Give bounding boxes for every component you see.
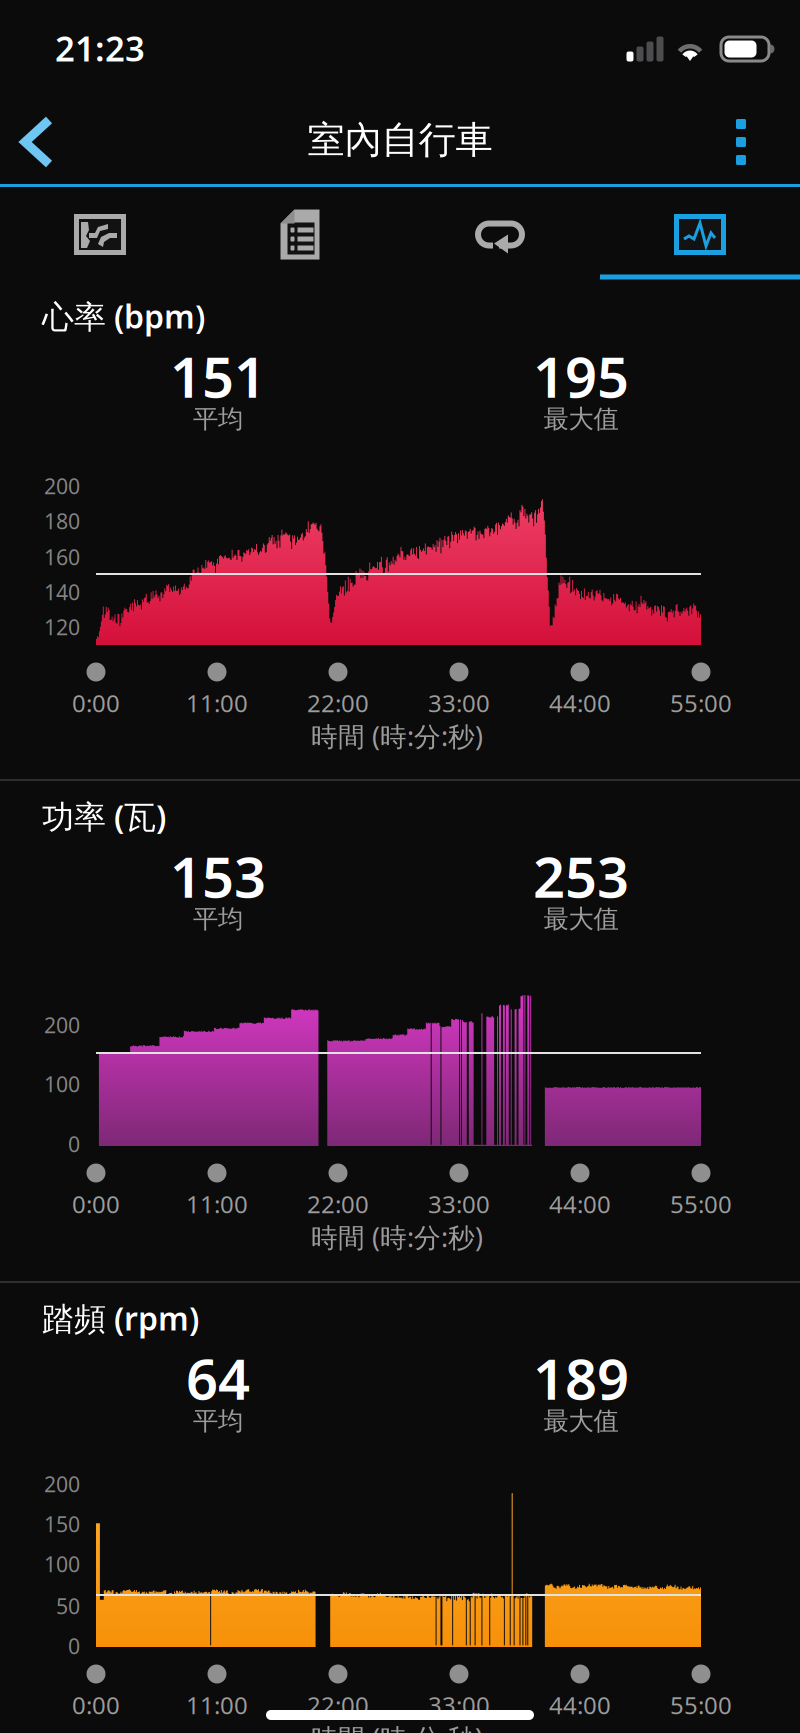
staticText: 0:00 <box>72 1188 120 1220</box>
button[interactable]: Laps <box>200 189 400 279</box>
staticText: 33:00 <box>428 1689 490 1721</box>
staticText: 33:00 <box>428 687 490 719</box>
staticText: 180 <box>44 507 80 535</box>
staticText: 平均 <box>193 903 243 934</box>
staticText: 200 <box>44 472 80 500</box>
staticText: 11:00 <box>186 687 248 719</box>
staticText: 55:00 <box>670 687 732 719</box>
staticText: 時間 (時:分:秒) <box>311 718 483 754</box>
staticText: 153 <box>170 839 266 913</box>
staticText: 時間 (時:分:秒) <box>311 1219 483 1255</box>
staticText: 44:00 <box>549 1188 611 1220</box>
staticText: 44:00 <box>549 1689 611 1721</box>
staticText: 22:00 <box>307 1188 369 1220</box>
staticText: 0 <box>68 1632 80 1660</box>
staticText: 22:00 <box>307 1689 369 1721</box>
button[interactable]: More options <box>704 95 778 189</box>
staticText: 44:00 <box>549 687 611 719</box>
staticText: 100 <box>44 1070 80 1098</box>
staticText: 200 <box>44 1470 80 1498</box>
staticText: 最大值 <box>543 903 618 934</box>
staticText: 22:00 <box>307 687 369 719</box>
staticText: 心率 (bpm) <box>42 295 205 337</box>
staticText: 120 <box>44 613 80 641</box>
staticText: 151 <box>170 339 266 413</box>
staticText: 195 <box>533 339 629 413</box>
button[interactable]: Charts <box>600 189 800 279</box>
staticText: 0 <box>68 1130 80 1158</box>
staticText: 140 <box>44 578 80 606</box>
button[interactable]: Back <box>0 95 74 189</box>
staticText: 253 <box>533 839 629 913</box>
staticText: 室內自行車 <box>307 117 492 163</box>
button[interactable]: Intervals <box>400 189 600 279</box>
staticText: 11:00 <box>186 1689 248 1721</box>
staticText: 時間 (時:分:秒) <box>311 1720 483 1733</box>
staticText: 最大值 <box>543 1405 618 1436</box>
staticText: 160 <box>44 543 80 571</box>
staticText: 功率 (瓦) <box>42 795 166 837</box>
staticText: 最大值 <box>543 403 618 434</box>
staticText: 0:00 <box>72 687 120 719</box>
staticText: 64 <box>186 1341 250 1415</box>
staticText: 100 <box>44 1550 80 1578</box>
button[interactable]: Map <box>0 189 200 279</box>
staticText: 55:00 <box>670 1689 732 1721</box>
staticText: 50 <box>56 1592 80 1620</box>
staticText: 平均 <box>193 403 243 434</box>
staticText: 11:00 <box>186 1188 248 1220</box>
staticText: 189 <box>533 1341 629 1415</box>
staticText: 21:23 <box>55 25 145 71</box>
staticText: 0:00 <box>72 1689 120 1721</box>
staticText: 200 <box>44 1011 80 1039</box>
staticText: 踏頻 (rpm) <box>42 1297 199 1339</box>
staticText: 55:00 <box>670 1188 732 1220</box>
staticText: 150 <box>44 1510 80 1538</box>
staticText: 平均 <box>193 1405 243 1436</box>
staticText: 33:00 <box>428 1188 490 1220</box>
